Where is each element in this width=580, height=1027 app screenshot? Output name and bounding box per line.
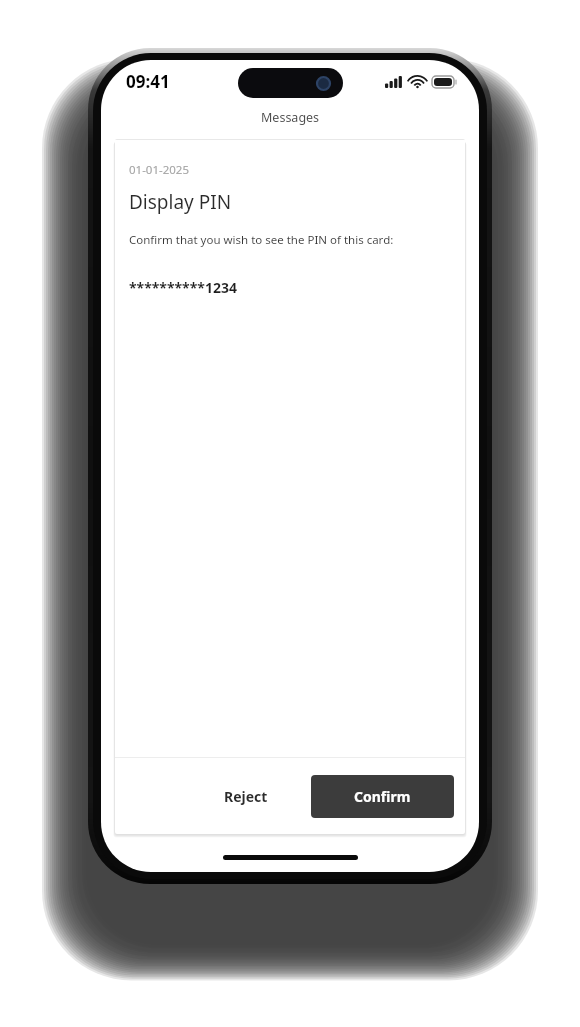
- staticText: Reject: [224, 787, 268, 806]
- staticText: **********1234: [129, 278, 237, 297]
- button[interactable]: Reject: [202, 776, 290, 817]
- staticText: Confirm that you wish to see the PIN of …: [129, 232, 394, 248]
- button[interactable]: Confirm: [311, 775, 454, 818]
- staticText: 09:41: [126, 70, 170, 93]
- staticText: 01-01-2025: [129, 162, 190, 178]
- staticText: Messages: [261, 109, 320, 126]
- staticText: Confirm: [354, 787, 411, 806]
- staticText: Display PIN: [129, 189, 232, 215]
